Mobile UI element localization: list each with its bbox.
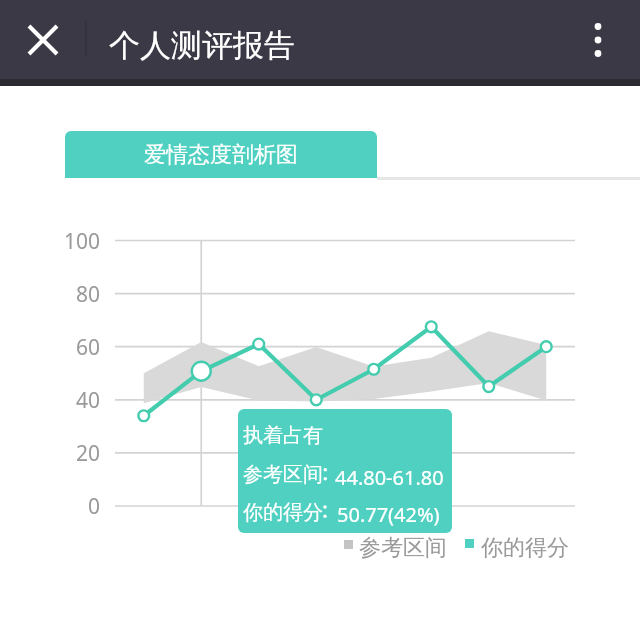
staticText: 80 [40, 280, 100, 309]
staticText: 参考区间 [359, 534, 447, 562]
staticText: 个人测评报告 [109, 26, 295, 65]
staticText: 50.77(42%) [337, 501, 440, 528]
staticText: 44.80-61.80 [335, 464, 444, 491]
staticText: 你的得分 [481, 534, 569, 562]
staticText: 0 [40, 492, 100, 521]
button[interactable]: 执着占有 [238, 409, 452, 533]
staticText: 100 [40, 227, 100, 256]
button[interactable]: 爱情态度剖析图 [65, 131, 377, 178]
staticText: 40 [40, 386, 100, 415]
staticText: 你的得分 [243, 500, 323, 525]
staticText: 60 [40, 333, 100, 362]
staticText: 20 [40, 439, 100, 468]
staticText: 爱情态度剖析图 [144, 141, 298, 169]
button[interactable]: More options [576, 18, 620, 62]
button[interactable]: Close [21, 18, 65, 62]
staticText: 参考区间 [243, 462, 323, 487]
staticText: 执着占有 [243, 423, 323, 448]
